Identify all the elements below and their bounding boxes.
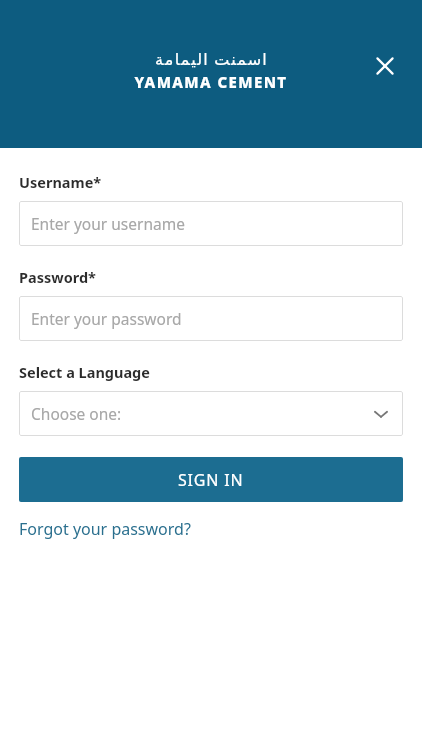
staticText: Enter your username bbox=[31, 213, 185, 234]
staticText: Select a Language bbox=[19, 362, 150, 382]
button[interactable]: Enter your password bbox=[19, 296, 403, 341]
staticText: Password* bbox=[19, 267, 96, 287]
button[interactable]: SIGN IN bbox=[19, 457, 403, 502]
staticText: Username* bbox=[19, 172, 102, 192]
staticText: SIGN IN bbox=[178, 469, 244, 491]
staticText: Enter your password bbox=[31, 308, 182, 329]
staticText: YAMAMA CEMENT bbox=[134, 72, 288, 92]
button[interactable]: Forgot your password? bbox=[19, 516, 191, 542]
button[interactable]: Choose one: bbox=[19, 391, 403, 436]
staticText: Forgot your password? bbox=[19, 518, 191, 540]
staticText: اسمنت اليمامة bbox=[155, 48, 268, 70]
button[interactable]: Close bbox=[361, 42, 409, 90]
staticText: Choose one: bbox=[31, 403, 122, 424]
button[interactable]: Enter your username bbox=[19, 201, 403, 246]
